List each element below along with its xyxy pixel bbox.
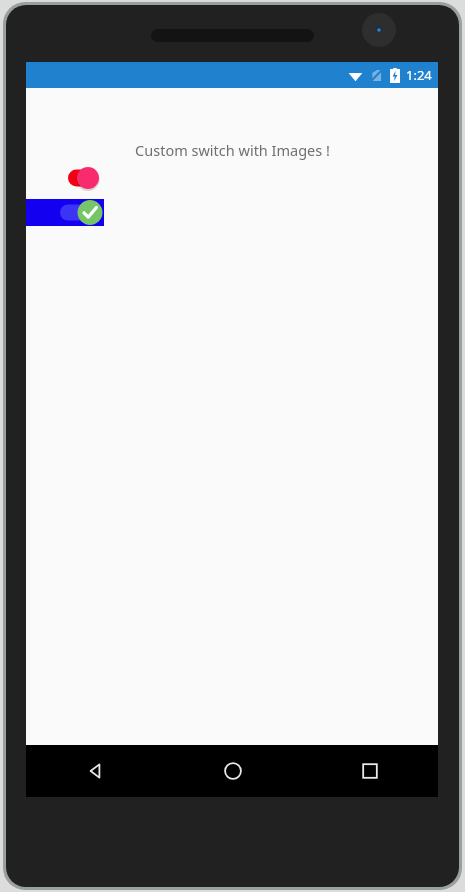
- button[interactable]: [26, 199, 104, 226]
- button[interactable]: Back: [26, 745, 164, 797]
- button[interactable]: [60, 164, 105, 192]
- button[interactable]: Home: [164, 745, 301, 797]
- staticText: Custom switch with Images !: [135, 140, 330, 160]
- button[interactable]: Recent apps: [301, 745, 438, 797]
- staticText: 1:24: [406, 66, 432, 84]
